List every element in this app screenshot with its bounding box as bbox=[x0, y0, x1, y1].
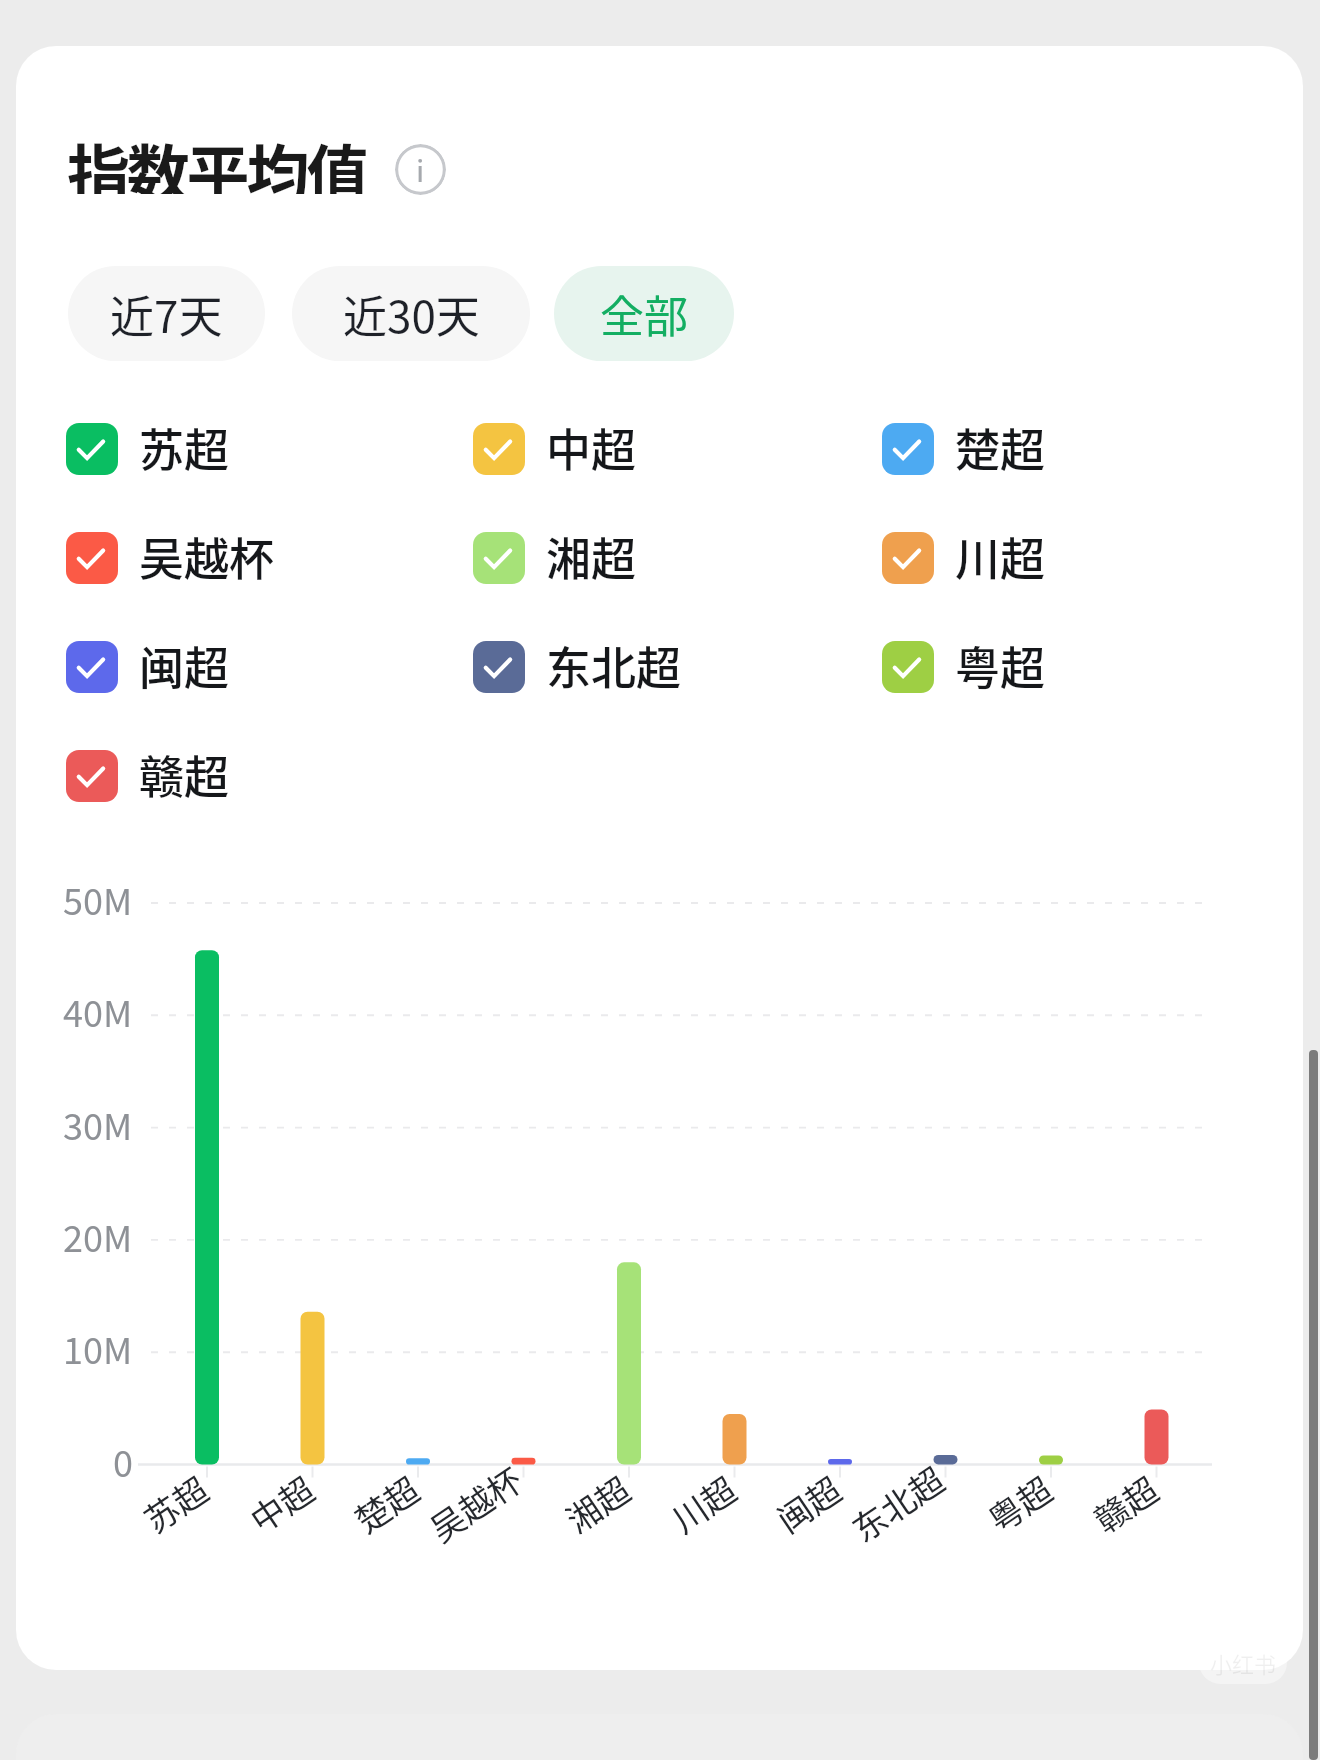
button[interactable]: 苏超 bbox=[60, 411, 250, 487]
staticText: 东北超 bbox=[546, 633, 682, 698]
staticText: i bbox=[416, 147, 425, 190]
staticText: 赣超 bbox=[139, 742, 230, 807]
button[interactable]: 近30天 bbox=[292, 266, 530, 361]
staticText: 苏超 bbox=[139, 415, 230, 480]
button[interactable]: 楚超 bbox=[876, 411, 1066, 487]
staticText: 闽超 bbox=[139, 633, 230, 698]
staticText: 苏超 bbox=[133, 1464, 214, 1539]
staticText: 近30天 bbox=[343, 282, 480, 346]
staticText: 40M bbox=[63, 985, 133, 1037]
staticText: 川超 bbox=[955, 524, 1046, 589]
button[interactable]: 川超 bbox=[876, 520, 1066, 596]
staticText: 吴越杯 bbox=[139, 524, 275, 589]
staticText: 东北超 bbox=[841, 1454, 950, 1548]
staticText: 全部 bbox=[600, 282, 688, 346]
staticText: 0 bbox=[113, 1435, 133, 1487]
staticText: 赣超 bbox=[1083, 1464, 1164, 1539]
staticText: 近7天 bbox=[110, 282, 223, 346]
staticText: 中超 bbox=[546, 415, 637, 480]
button[interactable]: 粤超 bbox=[876, 629, 1066, 705]
staticText: 粤超 bbox=[955, 633, 1046, 698]
staticText: 中超 bbox=[239, 1464, 320, 1539]
button[interactable]: 湘超 bbox=[467, 520, 657, 596]
staticText: 闽超 bbox=[766, 1464, 847, 1539]
button[interactable]: 近7天 bbox=[68, 266, 265, 361]
button[interactable]: 闽超 bbox=[60, 629, 250, 705]
staticText: 吴越杯 bbox=[419, 1454, 528, 1548]
button[interactable]: 中超 bbox=[467, 411, 657, 487]
staticText: 30M bbox=[63, 1098, 133, 1150]
button[interactable]: 东北超 bbox=[467, 629, 702, 705]
button[interactable]: 吴越杯 bbox=[60, 520, 295, 596]
staticText: 小红书 bbox=[1210, 1647, 1277, 1679]
staticText: 川超 bbox=[661, 1464, 742, 1539]
staticText: 20M bbox=[63, 1210, 133, 1262]
staticText: 指数平均值 bbox=[67, 124, 366, 194]
staticText: 50M bbox=[63, 873, 133, 925]
staticText: 10M bbox=[63, 1322, 133, 1374]
staticText: 楚超 bbox=[955, 415, 1046, 480]
staticText: 楚超 bbox=[344, 1464, 425, 1539]
button[interactable]: 说明 bbox=[395, 144, 446, 195]
button[interactable]: 全部 bbox=[554, 266, 734, 361]
staticText: 湘超 bbox=[546, 524, 637, 589]
staticText: 粤超 bbox=[977, 1464, 1058, 1539]
staticText: 湘超 bbox=[555, 1464, 636, 1539]
button[interactable]: 赣超 bbox=[60, 738, 250, 814]
